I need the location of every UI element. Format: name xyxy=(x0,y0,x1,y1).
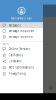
button[interactable]: Web Optimisations xyxy=(0,64,43,71)
button[interactable]: Online Services xyxy=(0,46,43,52)
button[interactable]: Message Requests xyxy=(0,28,43,34)
staticText: Online Services xyxy=(8,47,29,51)
button[interactable]: Privacy Policy xyxy=(0,71,43,77)
staticText: Calificanos xyxy=(8,53,22,57)
staticText: Mohammed Fazil xyxy=(11,17,32,20)
staticText: Messages xyxy=(8,24,20,27)
button[interactable]: Calificanos xyxy=(0,52,43,58)
staticText: Privacy Policy xyxy=(8,72,25,75)
staticText: Web Optimisations xyxy=(8,66,33,69)
button[interactable]: Message Business xyxy=(0,34,43,40)
button[interactable]: Messages xyxy=(0,22,43,28)
staticText: Message Business xyxy=(8,35,32,38)
button[interactable]: Compartir xyxy=(0,58,43,64)
staticText: More xyxy=(2,42,9,45)
staticText: Compartir xyxy=(8,59,21,63)
staticText: Message Requests xyxy=(8,29,33,33)
